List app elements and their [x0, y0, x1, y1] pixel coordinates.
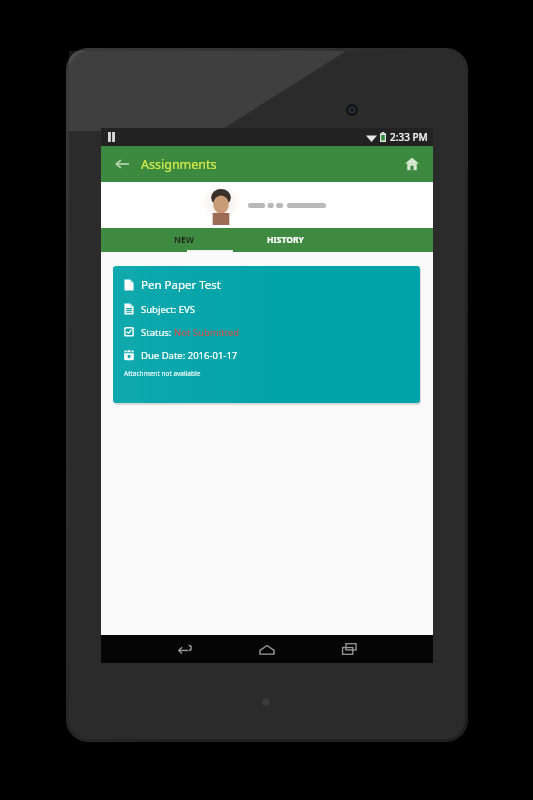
button[interactable]: Back — [109, 151, 135, 177]
staticText: Pen Paper Test — [141, 277, 221, 293]
button[interactable]: Back — [158, 635, 212, 663]
button[interactable]: NEW — [101, 228, 267, 252]
staticText: 2:33 PM — [390, 130, 428, 144]
staticText: Attachment not available — [124, 369, 201, 378]
staticText: Subject: EVS — [141, 303, 195, 316]
staticText: Status: — [141, 326, 174, 339]
button[interactable]: HISTORY — [267, 228, 433, 252]
staticText: Assignments — [141, 156, 217, 173]
staticText: Due Date: 2016-01-17 — [141, 349, 238, 362]
button[interactable]: Recent apps — [322, 635, 376, 663]
button[interactable]: Pen Paper Test — [113, 266, 420, 403]
button[interactable]: Home — [240, 635, 294, 663]
button[interactable] — [101, 182, 433, 228]
staticText: NEW — [174, 234, 194, 246]
staticText: Not Submitted — [174, 326, 240, 339]
staticText: HISTORY — [267, 234, 304, 246]
button[interactable]: Home — [399, 151, 425, 177]
